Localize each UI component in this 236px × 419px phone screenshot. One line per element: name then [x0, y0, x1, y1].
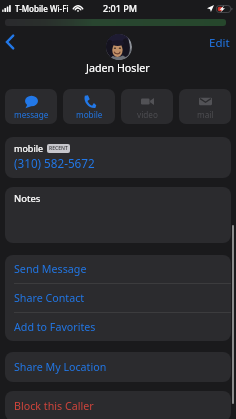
button[interactable]: Notes — [5, 187, 231, 243]
button[interactable]: Send Message — [5, 255, 231, 283]
staticText: message — [14, 109, 49, 120]
staticText: (310) 582-5672 — [14, 155, 95, 171]
button[interactable]: Back — [0, 32, 21, 52]
staticText: mail — [197, 109, 214, 120]
staticText: mobile — [14, 142, 44, 154]
button[interactable]: Share My Location — [5, 352, 231, 382]
staticText: RECENT — [49, 145, 68, 152]
staticText: Share Contact — [14, 291, 85, 306]
button[interactable]: message — [5, 89, 57, 124]
staticText: 2:01 PM — [103, 2, 137, 14]
staticText: Edit — [209, 35, 230, 51]
button[interactable]: video — [121, 89, 173, 124]
button[interactable]: Add to Favorites — [5, 313, 231, 341]
staticText: video — [137, 109, 158, 120]
button[interactable]: Block this Caller — [5, 391, 231, 419]
staticText: Send Message — [14, 262, 87, 277]
staticText: T-Mobile Wi-Fi — [15, 3, 69, 14]
staticText: Jaden Hosler — [86, 61, 150, 76]
button[interactable]: mobile — [63, 89, 115, 124]
button[interactable]: mail — [179, 89, 231, 124]
button[interactable]: Edit — [206, 34, 232, 51]
staticText: mobile — [76, 109, 103, 120]
staticText: Block this Caller — [14, 399, 94, 414]
staticText: Notes — [14, 192, 41, 205]
button[interactable]: Share Contact — [5, 284, 231, 312]
staticText: Share My Location — [14, 360, 107, 375]
button[interactable]: mobile — [5, 137, 231, 178]
staticText: Add to Favorites — [14, 320, 96, 335]
